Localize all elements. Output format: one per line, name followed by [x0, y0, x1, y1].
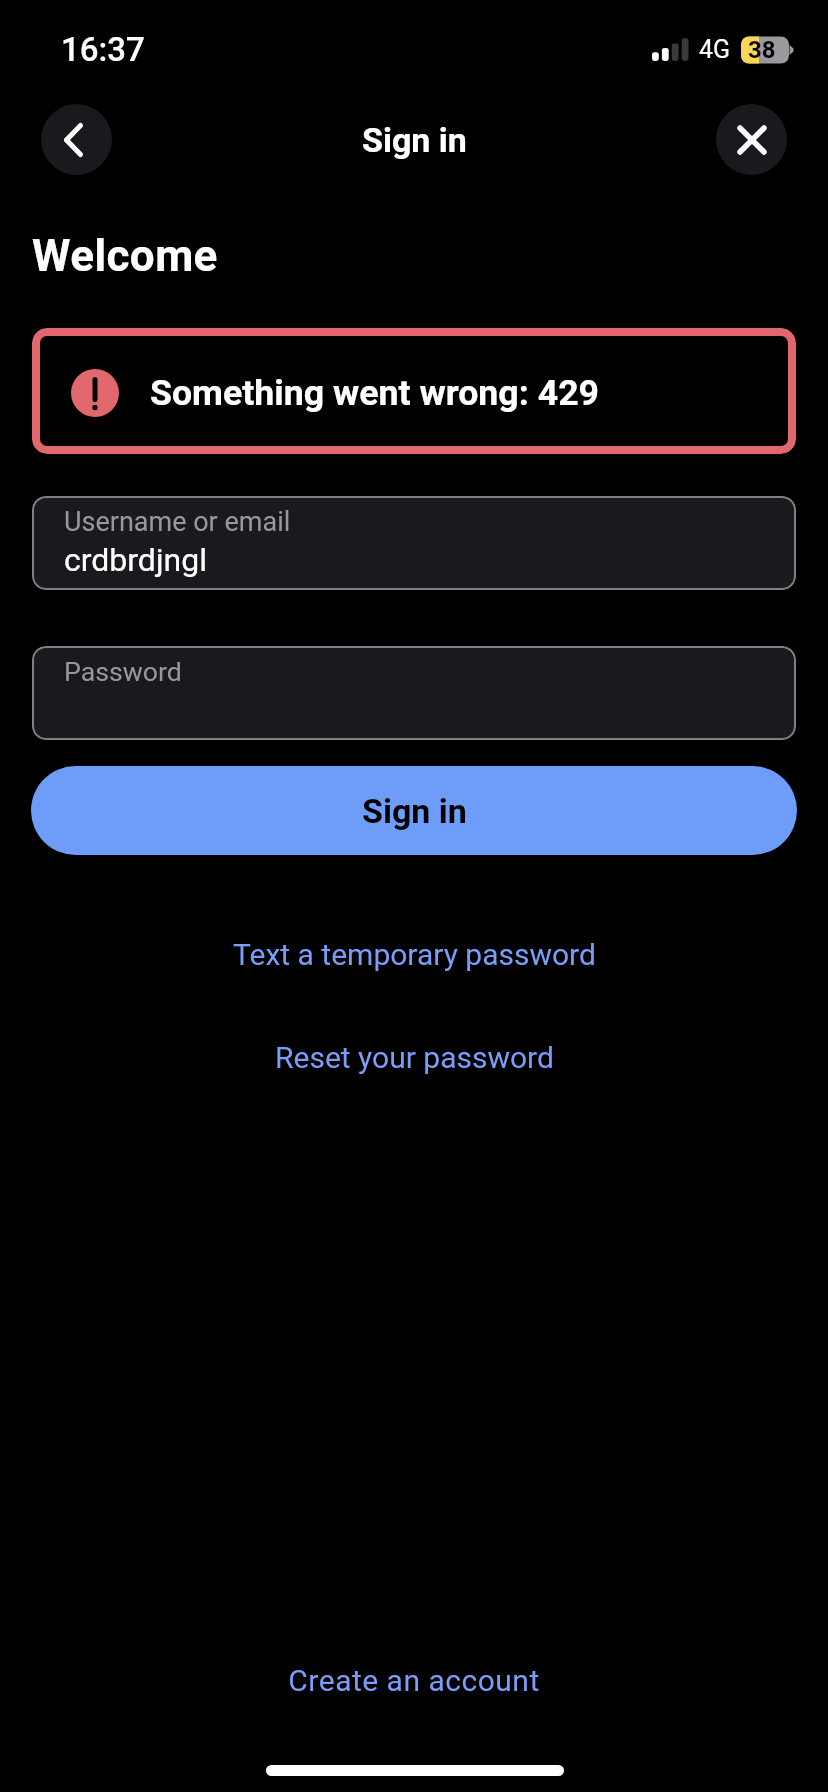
staticText: Sign in [362, 791, 467, 831]
staticText: Reset your password [275, 1040, 554, 1074]
staticText: Create an account [288, 1663, 540, 1697]
button[interactable]: Username or email [32, 496, 796, 590]
button[interactable]: Close [716, 104, 787, 175]
staticText: Welcome [32, 230, 218, 282]
staticText: Password [64, 656, 182, 687]
button[interactable]: Back [41, 104, 112, 175]
staticText: 4G [699, 35, 731, 64]
staticText: Text a temporary password [233, 937, 596, 971]
button[interactable]: Password [32, 646, 796, 740]
staticText: Something went wrong: 429 [150, 372, 600, 414]
button[interactable]: Text a temporary password [221, 929, 608, 979]
button[interactable]: Create an account [276, 1655, 552, 1705]
staticText: 38 [748, 36, 776, 64]
staticText: crdbrdjngl [64, 541, 207, 579]
button[interactable]: Reset your password [263, 1032, 566, 1082]
staticText: Username or email [64, 506, 291, 538]
staticText: 16:37 [61, 30, 145, 69]
staticText: Sign in [362, 120, 467, 160]
button[interactable]: Sign in [31, 766, 797, 855]
